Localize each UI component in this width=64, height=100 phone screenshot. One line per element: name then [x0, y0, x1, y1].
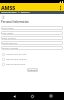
staticText: Email address [2, 42, 18, 45]
button[interactable]: Continue [27, 68, 38, 72]
staticText: Option one for this [6, 53, 27, 56]
button[interactable]: Home [27, 92, 37, 100]
staticText: AMSS [1, 4, 16, 11]
button[interactable]: Option one for this [0, 52, 64, 57]
staticText: Phone number [2, 47, 19, 50]
button[interactable]: First name [1, 26, 63, 30]
staticText: Continue [28, 69, 38, 72]
staticText: Personal information [1, 20, 29, 24]
button[interactable]: Phone number [1, 46, 63, 50]
staticText: First name [2, 27, 14, 30]
button[interactable]: Email address [1, 41, 63, 45]
staticText: Date of birth [2, 37, 16, 40]
button[interactable]: Profile photo [1, 15, 5, 19]
staticText: Option three here [6, 63, 26, 66]
button[interactable]: Option two choices [0, 57, 64, 62]
staticText: Option two choices [6, 58, 27, 61]
button[interactable]: Date of birth [1, 36, 63, 40]
button[interactable]: More options [58, 5, 63, 10]
button[interactable]: Option three here [0, 62, 64, 67]
button[interactable]: Recent apps [46, 92, 56, 100]
staticText: Last name [2, 32, 14, 35]
staticText: REGISTRATION > DETAILS [1, 11, 30, 14]
button[interactable]: Last name [1, 31, 63, 35]
button[interactable]: Back [9, 92, 19, 100]
